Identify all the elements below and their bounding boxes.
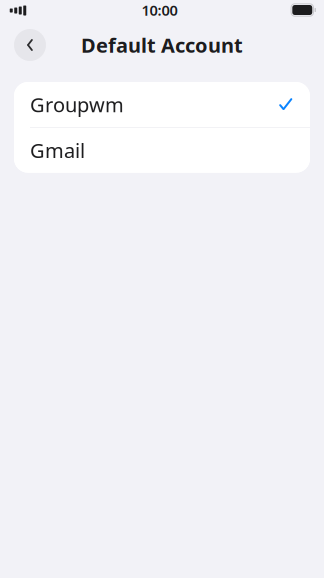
button[interactable]: Gmail [14, 128, 310, 173]
button[interactable]: Groupwm [14, 82, 310, 127]
staticText: Groupwm [30, 91, 124, 118]
staticText: Gmail [30, 137, 85, 163]
button[interactable]: Back [14, 29, 46, 61]
staticText: 10:00 [142, 0, 178, 20]
staticText: Default Account [81, 32, 243, 58]
